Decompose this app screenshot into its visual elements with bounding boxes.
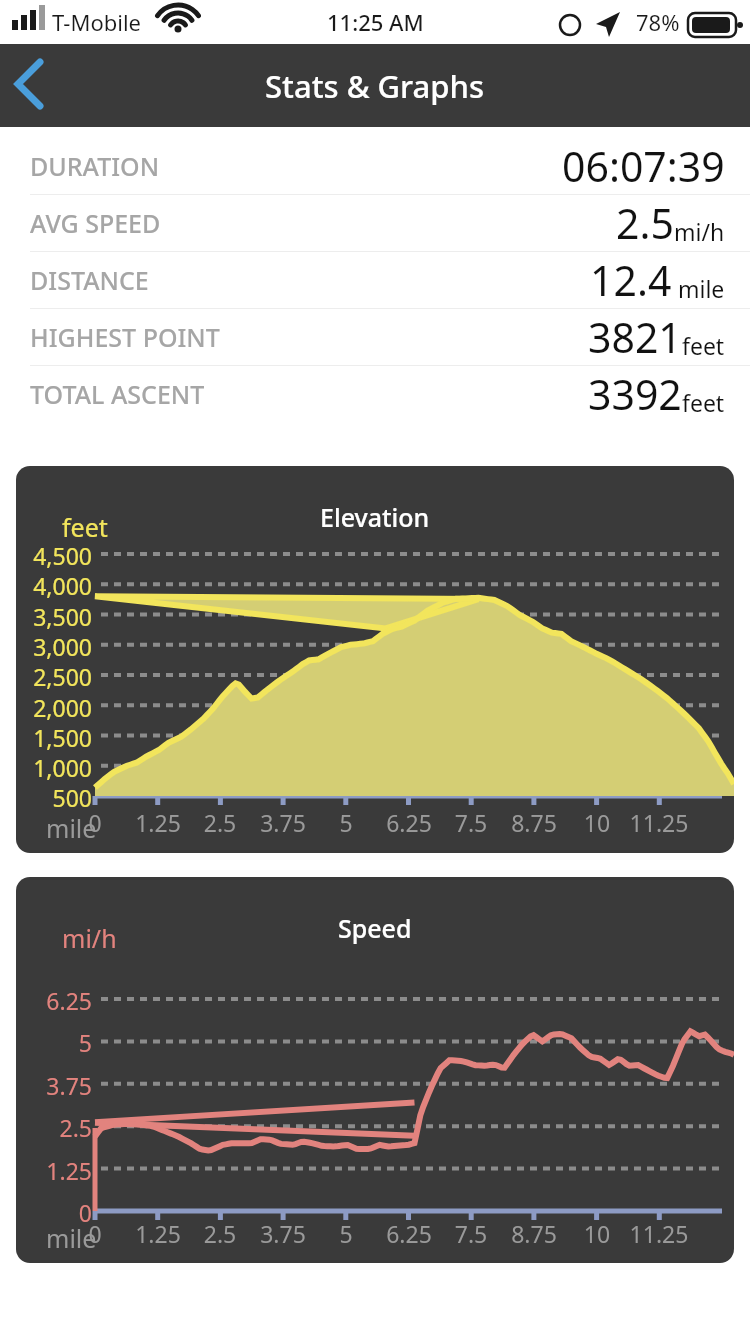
staticText: 4,000 — [16, 570, 92, 601]
staticText: T-Mobile — [52, 7, 141, 37]
staticText: Elevation — [320, 500, 430, 534]
staticText: 4,500 — [16, 540, 92, 571]
staticText: 2.5 — [16, 1112, 92, 1143]
button[interactable]: TOTAL ASCENT — [0, 366, 750, 422]
staticText: 5 — [316, 1218, 376, 1249]
staticText: 7.5 — [441, 1218, 501, 1249]
staticText: 500 — [16, 782, 92, 813]
staticText: 8.75 — [504, 1218, 564, 1249]
button[interactable]: Speed — [16, 877, 734, 1263]
staticText: 12.4 — [590, 252, 672, 308]
button[interactable]: AVG SPEED — [0, 195, 750, 251]
staticText: 5 — [16, 1027, 92, 1058]
staticText: Stats & Graphs — [265, 65, 485, 107]
staticText: 3.75 — [253, 1218, 313, 1249]
staticText: TOTAL ASCENT — [30, 377, 205, 411]
staticText: 2.5 — [616, 195, 674, 251]
button[interactable]: Back — [0, 44, 76, 127]
staticText: mile — [46, 811, 97, 845]
staticText: DISTANCE — [30, 263, 149, 297]
button[interactable]: Elevation — [16, 466, 734, 853]
staticText: 6.25 — [16, 985, 92, 1016]
staticText: mile — [672, 273, 725, 304]
staticText: mile — [46, 1221, 97, 1255]
staticText: DURATION — [30, 149, 160, 183]
button[interactable]: DURATION — [0, 138, 750, 194]
staticText: 2.5 — [190, 807, 250, 838]
staticText: 78% — [636, 7, 680, 37]
staticText: 3821 — [588, 309, 682, 365]
staticText: HIGHEST POINT — [30, 320, 220, 354]
staticText: 1,000 — [16, 752, 92, 783]
staticText: Speed — [338, 911, 412, 945]
staticText: 0 — [65, 1218, 125, 1249]
staticText: 3.75 — [253, 807, 313, 838]
staticText: 8.75 — [504, 807, 564, 838]
staticText: 2,000 — [16, 692, 92, 723]
staticText: 1.25 — [16, 1155, 92, 1186]
staticText: 0 — [16, 1197, 92, 1228]
staticText: 0 — [65, 807, 125, 838]
staticText: 3.75 — [16, 1070, 92, 1101]
staticText: 2.5 — [190, 1218, 250, 1249]
staticText: 7.5 — [441, 807, 501, 838]
button[interactable]: HIGHEST POINT — [0, 309, 750, 365]
staticText: 11.25 — [629, 807, 689, 838]
staticText: 3,000 — [16, 631, 92, 662]
staticText: 6.25 — [379, 1218, 439, 1249]
staticText: 1.25 — [128, 807, 188, 838]
staticText: mi/h — [674, 216, 725, 247]
staticText: 11:25 AM — [327, 7, 424, 37]
staticText: 3,500 — [16, 601, 92, 632]
staticText: 3392 — [588, 366, 682, 422]
staticText: mi/h — [62, 921, 117, 955]
staticText: feet — [62, 510, 108, 544]
staticText: 6.25 — [379, 807, 439, 838]
staticText: 10 — [567, 807, 627, 838]
staticText: 1.25 — [128, 1218, 188, 1249]
button[interactable]: DISTANCE — [0, 252, 750, 308]
staticText: feet — [682, 330, 725, 361]
staticText: 2,500 — [16, 661, 92, 692]
staticText: 10 — [567, 1218, 627, 1249]
staticText: feet — [682, 387, 725, 418]
staticText: AVG SPEED — [30, 206, 161, 240]
staticText: 11.25 — [629, 1218, 689, 1249]
staticText: 5 — [316, 807, 376, 838]
staticText: 1,500 — [16, 722, 92, 753]
staticText: 06:07:39 — [562, 138, 725, 194]
